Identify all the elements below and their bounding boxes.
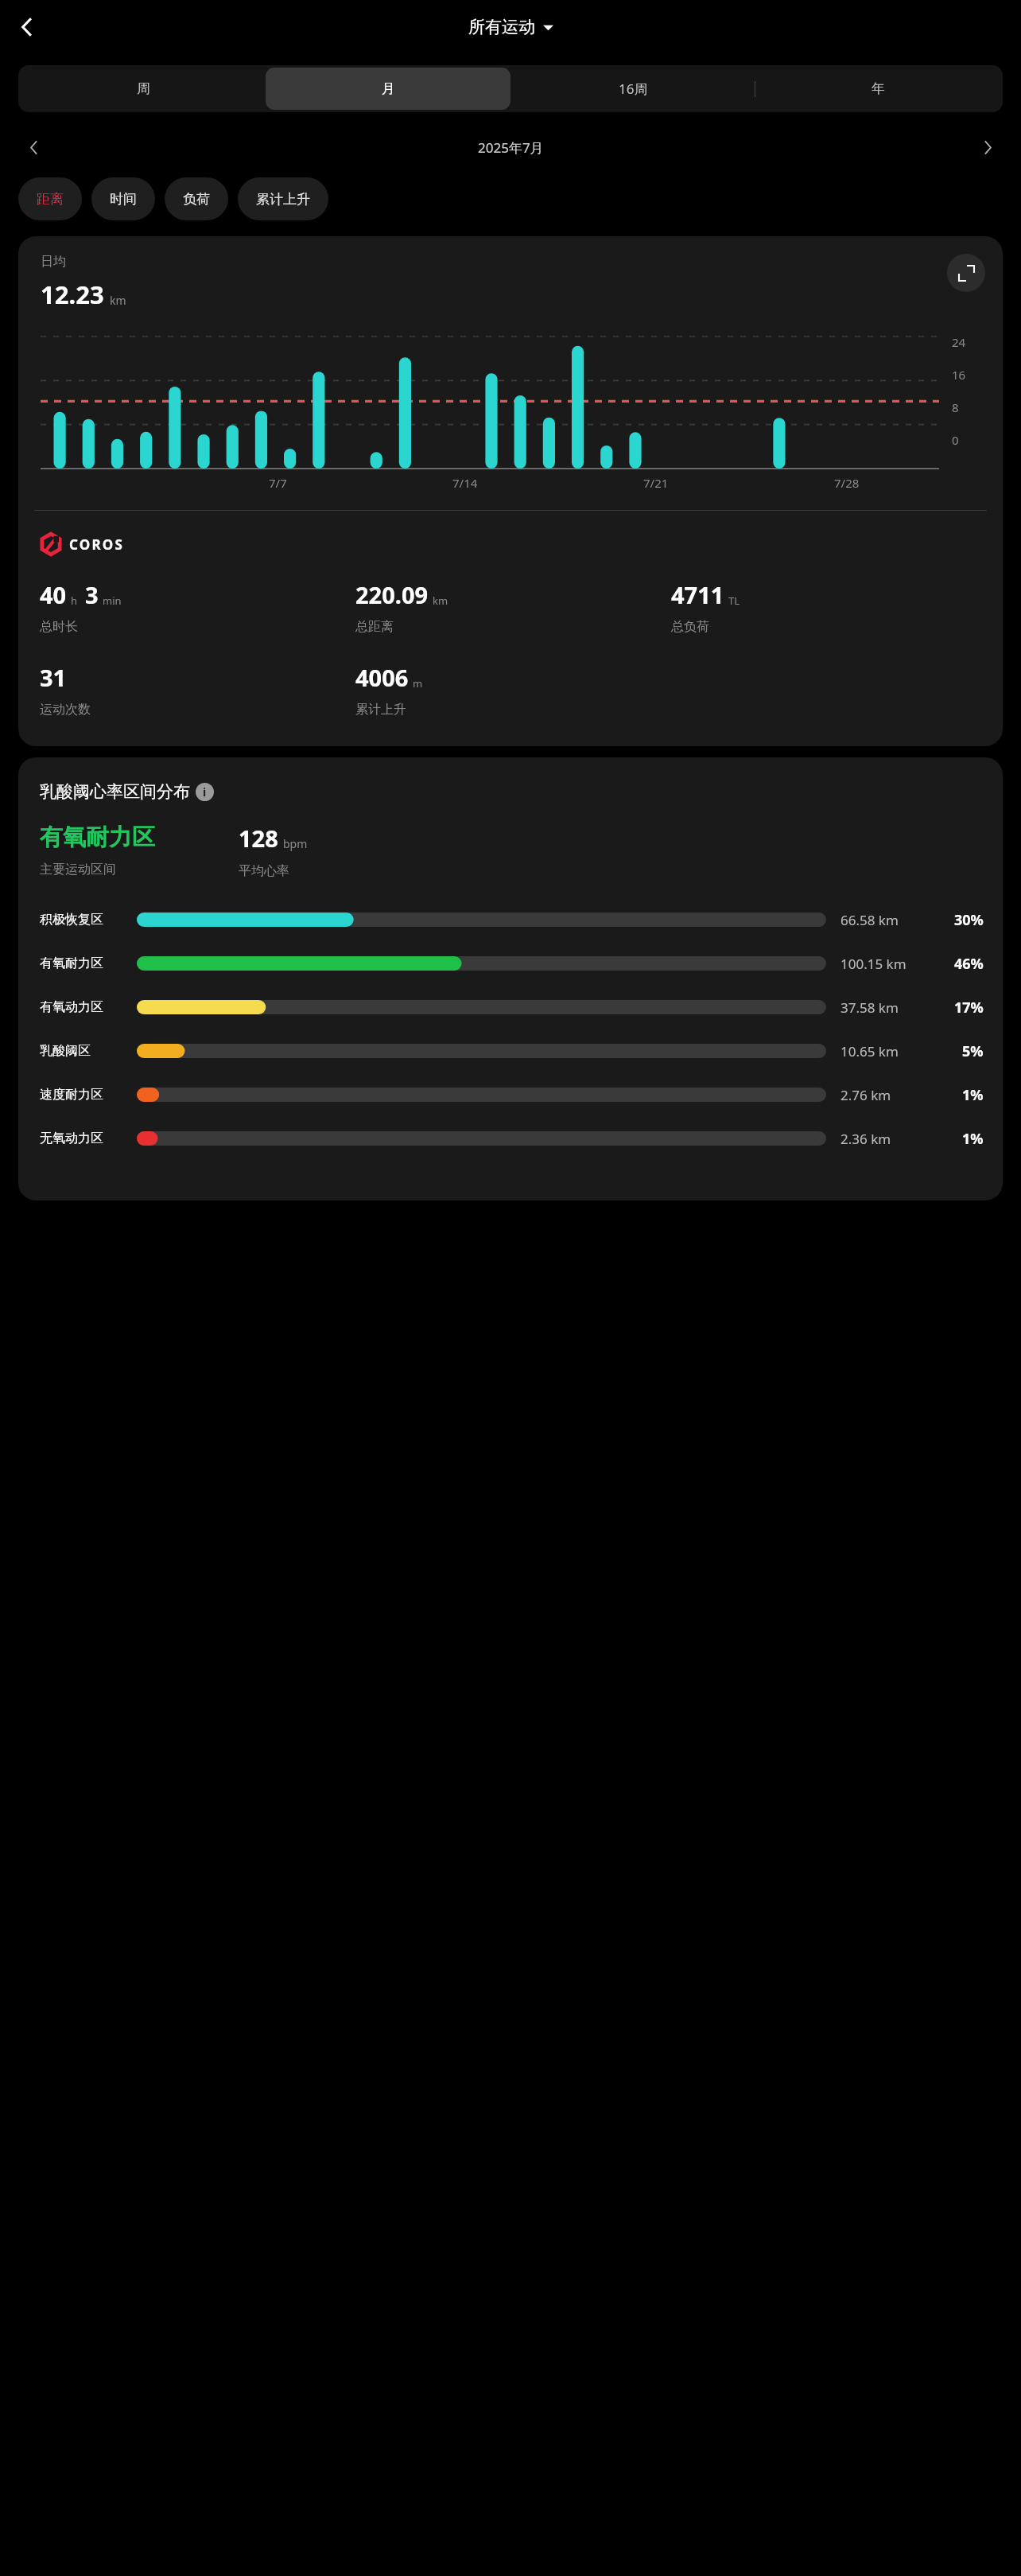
staticText: 24 bbox=[952, 334, 966, 350]
staticText: 负荷 bbox=[183, 191, 210, 208]
staticText: 16周 bbox=[619, 80, 648, 98]
button[interactable]: 距离 bbox=[18, 177, 82, 220]
staticText: 月 bbox=[382, 80, 395, 97]
button[interactable]: 16周 bbox=[510, 68, 755, 110]
staticText: 7/14 bbox=[452, 475, 478, 491]
staticText: 主要运动区间 bbox=[40, 862, 116, 877]
staticText: 10.65 km bbox=[840, 1042, 899, 1060]
button[interactable]: 乳酸阈区 bbox=[18, 1037, 1003, 1064]
staticText: 有氧耐力区 bbox=[40, 823, 155, 852]
button[interactable]: 日均 bbox=[18, 236, 1003, 746]
staticText: 220.09 bbox=[355, 579, 429, 610]
staticText: 128 bbox=[239, 823, 278, 854]
button[interactable]: 无氧动力区 bbox=[18, 1125, 1003, 1152]
staticText: 7/7 bbox=[269, 475, 287, 491]
staticText: 总距离 bbox=[355, 619, 394, 635]
staticText: 100.15 km bbox=[840, 955, 906, 973]
staticText: 累计上升 bbox=[355, 702, 406, 718]
button[interactable]: 乳酸阈心率区间分布 bbox=[18, 757, 1003, 1200]
button[interactable]: 累计上升 bbox=[238, 177, 328, 220]
staticText: h bbox=[71, 593, 78, 608]
staticText: 30% bbox=[954, 910, 984, 930]
button[interactable]: 负荷 bbox=[165, 177, 228, 220]
staticText: 距离 bbox=[37, 191, 64, 208]
button[interactable]: 周 bbox=[21, 68, 266, 110]
staticText: 有氧耐力区 bbox=[40, 955, 103, 971]
staticText: 乳酸阈心率区间分布 bbox=[40, 781, 190, 802]
staticText: 46% bbox=[954, 954, 984, 974]
staticText: 5% bbox=[962, 1041, 984, 1061]
staticText: 4006 bbox=[355, 662, 409, 693]
staticText: 时间 bbox=[110, 191, 137, 208]
staticText: 8 bbox=[952, 399, 959, 415]
button[interactable]: 速度耐力区 bbox=[18, 1081, 1003, 1108]
button[interactable]: Next month bbox=[970, 130, 1005, 165]
button[interactable]: Back bbox=[6, 6, 48, 48]
staticText: 40 bbox=[40, 579, 67, 610]
staticText: 37.58 km bbox=[840, 998, 899, 1017]
staticText: 所有运动 bbox=[468, 17, 535, 37]
staticText: 日均 bbox=[41, 254, 66, 270]
button[interactable]: 时间 bbox=[91, 177, 155, 220]
staticText: 累计上升 bbox=[256, 191, 310, 208]
staticText: 1% bbox=[962, 1129, 984, 1149]
staticText: 2025年7月 bbox=[478, 138, 544, 157]
staticText: 66.58 km bbox=[840, 911, 899, 929]
staticText: min bbox=[103, 593, 122, 608]
button[interactable]: 年 bbox=[755, 68, 1000, 110]
staticText: 17% bbox=[954, 998, 984, 1018]
staticText: 年 bbox=[872, 80, 885, 97]
staticText: 积极恢复区 bbox=[40, 912, 103, 928]
staticText: 7/28 bbox=[834, 475, 860, 491]
staticText: 速度耐力区 bbox=[40, 1087, 103, 1103]
staticText: 1% bbox=[962, 1085, 984, 1105]
button[interactable]: 有氧动力区 bbox=[18, 994, 1003, 1021]
button[interactable]: 月 bbox=[266, 68, 510, 110]
staticText: 有氧动力区 bbox=[40, 999, 103, 1015]
staticText: 周 bbox=[137, 80, 150, 97]
staticText: 4711 bbox=[671, 579, 724, 610]
staticText: 7/21 bbox=[643, 475, 669, 491]
staticText: km bbox=[110, 293, 126, 308]
staticText: 总时长 bbox=[40, 619, 78, 635]
staticText: 31 bbox=[40, 662, 67, 693]
button[interactable]: 积极恢复区 bbox=[18, 906, 1003, 933]
button[interactable]: Expand chart bbox=[947, 254, 985, 292]
button[interactable]: Previous month bbox=[16, 130, 51, 165]
button[interactable]: Info bbox=[196, 783, 214, 801]
staticText: TL bbox=[728, 593, 740, 608]
staticText: i bbox=[203, 784, 207, 800]
staticText: 无氧动力区 bbox=[40, 1130, 103, 1146]
staticText: 2.76 km bbox=[840, 1086, 891, 1104]
button[interactable]: 有氧耐力区 bbox=[18, 950, 1003, 977]
staticText: 12.23 bbox=[41, 278, 104, 311]
staticText: m bbox=[413, 676, 423, 691]
staticText: 2.36 km bbox=[840, 1130, 891, 1148]
staticText: COROS bbox=[69, 535, 124, 554]
staticText: 运动次数 bbox=[40, 702, 91, 718]
staticText: 平均心率 bbox=[239, 863, 289, 879]
staticText: 总负荷 bbox=[671, 619, 709, 635]
staticText: km bbox=[433, 593, 448, 608]
button[interactable]: 所有运动 bbox=[462, 14, 560, 41]
staticText: 16 bbox=[952, 367, 966, 383]
staticText: 乳酸阈区 bbox=[40, 1043, 91, 1059]
staticText: 0 bbox=[952, 432, 959, 448]
staticText: bpm bbox=[283, 836, 308, 851]
staticText: 3 bbox=[85, 579, 99, 610]
